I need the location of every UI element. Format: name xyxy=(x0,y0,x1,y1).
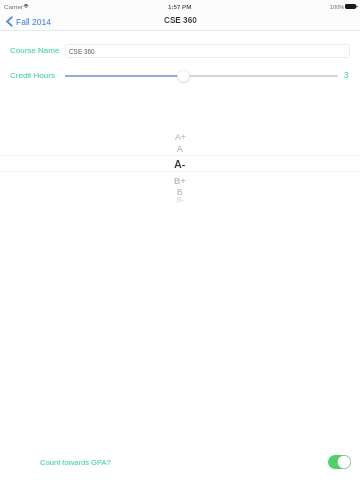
staticText: Carrier xyxy=(4,3,23,10)
staticText: CSE 360 xyxy=(69,48,95,55)
staticText: A+ xyxy=(175,132,186,142)
button[interactable]: Count towards GPA toggle xyxy=(328,455,351,469)
button[interactable]: Count towards GPA? xyxy=(40,454,111,469)
staticText: A xyxy=(177,144,183,154)
button[interactable]: Credit hours slider xyxy=(63,69,340,83)
staticText: B xyxy=(177,187,183,196)
staticText: Credit Hours xyxy=(10,71,55,80)
staticText: Fall 2014 xyxy=(16,17,51,26)
staticText: 1:57 PM xyxy=(168,3,192,10)
button[interactable]: CSE 360 xyxy=(65,44,350,58)
staticText: B- xyxy=(177,196,184,204)
staticText: B+ xyxy=(174,175,186,186)
staticText: CSE 360 xyxy=(164,16,197,25)
button[interactable]: A+ xyxy=(0,124,360,210)
staticText: A- xyxy=(174,158,186,170)
staticText: Count towards GPA? xyxy=(40,458,111,466)
button[interactable]: Fall 2014 xyxy=(0,13,56,30)
staticText: 100% xyxy=(330,4,345,10)
staticText: Course Name xyxy=(10,46,60,55)
staticText: 3 xyxy=(344,71,349,80)
